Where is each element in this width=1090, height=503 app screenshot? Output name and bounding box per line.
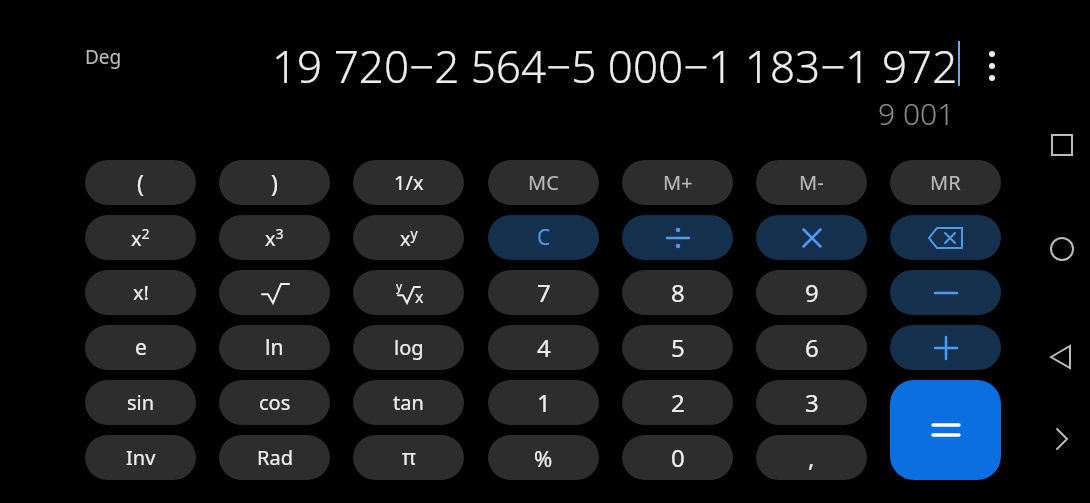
button[interactable]: Inv — [85, 435, 196, 480]
button[interactable]: , — [756, 435, 867, 480]
staticText: Inv — [126, 444, 156, 471]
button[interactable]: 4 — [488, 325, 599, 370]
staticText: 9 — [805, 276, 819, 309]
staticText: ) — [271, 167, 278, 198]
button[interactable]: 6 — [756, 325, 867, 370]
staticText: 3 — [805, 386, 819, 419]
button[interactable]: 1/x — [353, 160, 464, 205]
button[interactable]: 0 — [622, 435, 733, 480]
button[interactable]: Recents — [1038, 121, 1086, 169]
button[interactable]: % — [488, 435, 599, 480]
button[interactable]: 9 — [756, 270, 867, 315]
button[interactable]: Delete — [890, 215, 1001, 260]
button[interactable]: Divide — [622, 215, 733, 260]
staticText: 2 — [671, 386, 685, 419]
staticText: cos — [259, 389, 291, 416]
staticText: 1 — [537, 386, 551, 419]
staticText: , — [808, 441, 815, 474]
staticText: MC — [528, 169, 559, 196]
button[interactable]: MR — [890, 160, 1001, 205]
button[interactable]: Expand — [1038, 415, 1086, 463]
staticText: 1/x — [394, 169, 424, 196]
button[interactable]: Back — [1038, 333, 1086, 381]
staticText: 8 — [671, 276, 685, 309]
staticText: log — [394, 334, 424, 361]
button[interactable]: Home — [1038, 225, 1086, 273]
staticText: 19 720−2 564−5 000−1 183−1 972 — [272, 36, 958, 96]
button[interactable]: log — [353, 325, 464, 370]
button[interactable]: 3 — [756, 380, 867, 425]
button[interactable]: x3 — [219, 215, 330, 260]
staticText: tan — [393, 389, 424, 416]
button[interactable]: M+ — [622, 160, 733, 205]
staticText: M+ — [663, 169, 693, 196]
staticText: sin — [127, 389, 155, 416]
button[interactable]: tan — [353, 380, 464, 425]
button[interactable]: ( — [85, 160, 196, 205]
staticText: x — [415, 286, 424, 308]
button[interactable]: 5 — [622, 325, 733, 370]
button[interactable]: x! — [85, 270, 196, 315]
button[interactable]: Equals — [890, 380, 1001, 480]
button[interactable]: Plus — [890, 325, 1001, 370]
staticText: y — [396, 278, 403, 294]
staticText: ( — [137, 167, 144, 198]
staticText: M- — [799, 169, 824, 196]
button[interactable]: M- — [756, 160, 867, 205]
staticText: Rad — [257, 444, 293, 471]
button[interactable]: MC — [488, 160, 599, 205]
staticText: C — [537, 223, 551, 252]
button[interactable]: cos — [219, 380, 330, 425]
button[interactable]: xy — [353, 215, 464, 260]
button[interactable]: More options — [971, 42, 1013, 90]
staticText: x3 — [265, 224, 284, 252]
staticText: % — [534, 443, 553, 473]
staticText: 9 001 — [878, 93, 955, 134]
staticText: x! — [133, 279, 149, 306]
staticText: 5 — [671, 331, 685, 364]
button[interactable]: C — [488, 215, 599, 260]
staticText: Deg — [85, 44, 122, 70]
button[interactable]: x2 — [85, 215, 196, 260]
button[interactable]: Sqrt — [219, 270, 330, 315]
button[interactable]: sin — [85, 380, 196, 425]
button[interactable]: ln — [219, 325, 330, 370]
staticText: MR — [930, 169, 961, 196]
button[interactable]: 1 — [488, 380, 599, 425]
button[interactable]: NthRoot — [353, 270, 464, 315]
staticText: ln — [265, 333, 284, 362]
staticText: xy — [400, 224, 418, 252]
staticText: 6 — [805, 331, 819, 364]
staticText: x2 — [131, 224, 150, 252]
staticText: 4 — [537, 331, 551, 364]
button[interactable]: ) — [219, 160, 330, 205]
button[interactable]: Multiply — [756, 215, 867, 260]
staticText: 7 — [537, 276, 551, 309]
staticText: 0 — [671, 441, 685, 474]
staticText: π — [402, 443, 416, 472]
button[interactable]: Rad — [219, 435, 330, 480]
button[interactable]: Angle unit Degrees — [85, 44, 122, 70]
button[interactable]: e — [85, 325, 196, 370]
button[interactable]: 2 — [622, 380, 733, 425]
staticText: e — [135, 333, 147, 362]
button[interactable]: 8 — [622, 270, 733, 315]
button[interactable]: 7 — [488, 270, 599, 315]
button[interactable]: Minus — [890, 270, 1001, 315]
button[interactable]: π — [353, 435, 464, 480]
